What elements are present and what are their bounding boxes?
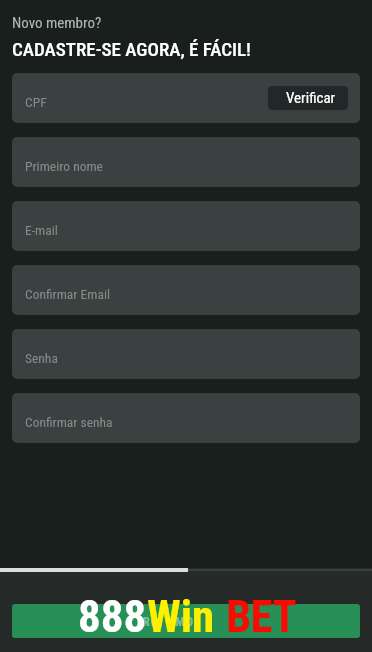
staticText: Confirmar senha bbox=[25, 414, 113, 430]
staticText: Win bbox=[147, 590, 215, 632]
staticText: CPF bbox=[25, 94, 47, 110]
button[interactable]: E-mail bbox=[12, 201, 360, 251]
staticText: BET bbox=[226, 590, 296, 632]
button[interactable]: Primeiro nome bbox=[12, 137, 360, 187]
button[interactable]: 888WinBET bbox=[12, 604, 360, 638]
button[interactable]: Senha bbox=[12, 329, 360, 379]
button[interactable]: Confirmar senha bbox=[12, 393, 360, 443]
button[interactable]: Verificar bbox=[268, 86, 348, 110]
staticText: Novo membro? bbox=[12, 14, 102, 32]
button[interactable]: CPF bbox=[12, 73, 360, 123]
staticText: Confirmar Email bbox=[25, 286, 111, 302]
staticText: 888 bbox=[78, 590, 147, 632]
staticText: CADASTRE-SE AGORA, É FÁCIL! bbox=[12, 38, 251, 60]
staticText: Verificar bbox=[286, 89, 336, 107]
staticText: E-mail bbox=[25, 222, 58, 238]
staticText: ROI KMO bbox=[143, 615, 195, 629]
staticText: Primeiro nome bbox=[25, 158, 103, 174]
button[interactable]: Confirmar Email bbox=[12, 265, 360, 315]
staticText: Senha bbox=[25, 350, 58, 366]
